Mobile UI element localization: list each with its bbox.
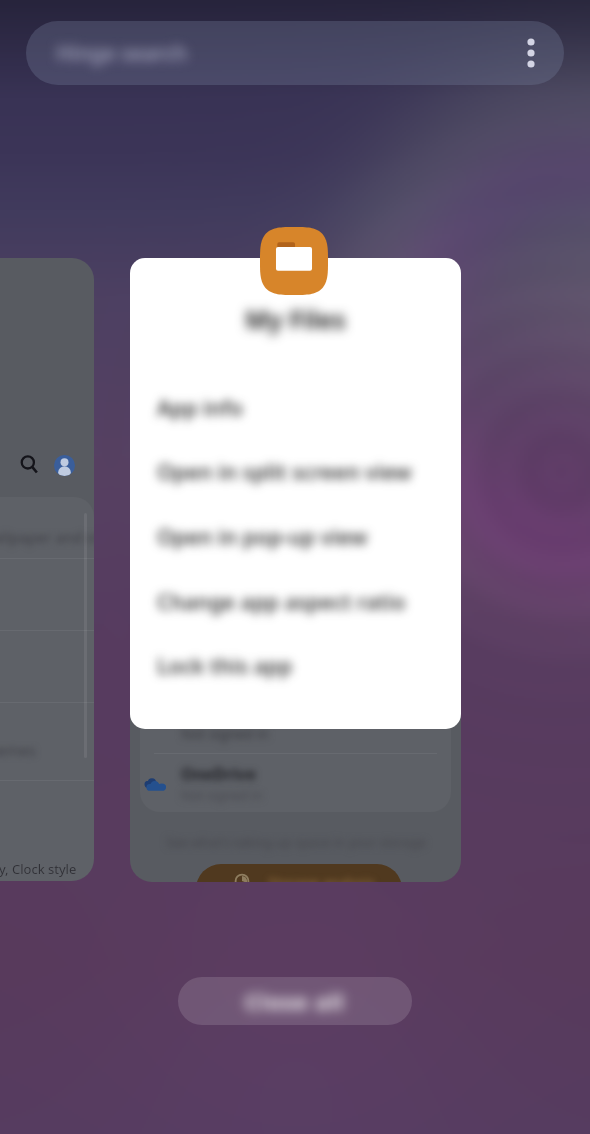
button[interactable]: More options (508, 30, 554, 76)
staticText: Themes (0, 740, 36, 760)
other: Search (19, 454, 40, 475)
button[interactable]: App info (130, 382, 461, 434)
staticText: Not signed in (181, 724, 269, 743)
staticText: y, Clock style (0, 860, 77, 878)
button[interactable]: Hinge search (26, 21, 564, 85)
staticText: Hinge search (56, 39, 188, 68)
staticText: OneDrive (181, 763, 256, 785)
staticText: Change app aspect ratio (157, 588, 406, 617)
staticText: Open in pop-up view (157, 523, 368, 552)
staticText: Wallpaper and style (0, 527, 94, 547)
button[interactable]: Open in pop-up view (130, 511, 461, 563)
button[interactable]: Close all (178, 977, 412, 1025)
button[interactable]: Open in split screen view (130, 446, 461, 498)
button[interactable]: Search (0, 258, 94, 881)
staticText: Lock this app (157, 652, 293, 681)
button[interactable]: Not signed in (130, 258, 461, 882)
staticText: App info (157, 394, 243, 423)
staticText: Close all (245, 986, 345, 1016)
other: Account (54, 455, 75, 476)
staticText: Storage analysis (268, 873, 375, 882)
button[interactable]: Change app aspect ratio (130, 576, 461, 628)
button[interactable]: Lock this app (130, 640, 461, 692)
staticText: Open in split screen view (157, 458, 412, 487)
button[interactable]: Storage analysis (196, 864, 402, 882)
staticText: My Files (245, 302, 346, 336)
